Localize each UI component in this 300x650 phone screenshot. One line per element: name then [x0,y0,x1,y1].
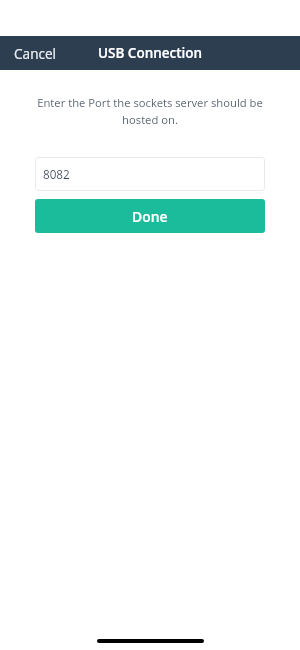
staticText: Enter the Port the sockets server should… [28,95,272,127]
button[interactable]: Done [35,199,265,233]
staticText: USB Connection [98,44,203,62]
button[interactable]: 8082 [35,157,265,191]
staticText: Cancel [14,44,57,63]
staticText: 8082 [43,166,70,182]
button[interactable]: Cancel [0,36,71,70]
staticText: Done [132,207,168,226]
